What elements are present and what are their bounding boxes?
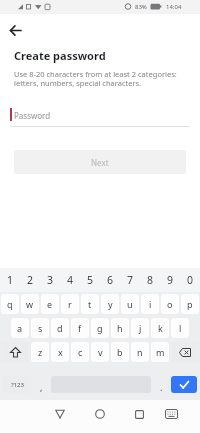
button[interactable]: z bbox=[31, 342, 49, 362]
staticText: o bbox=[167, 298, 173, 310]
button[interactable] bbox=[48, 402, 72, 426]
staticText: 2 bbox=[27, 273, 34, 287]
staticText: m bbox=[156, 346, 165, 358]
staticText: a bbox=[17, 322, 23, 334]
button[interactable]: k bbox=[151, 318, 169, 338]
button[interactable] bbox=[171, 376, 197, 393]
button[interactable]: v bbox=[91, 342, 109, 362]
staticText: q bbox=[7, 298, 13, 310]
staticText: p bbox=[187, 298, 193, 310]
staticText: j bbox=[139, 322, 142, 334]
button[interactable] bbox=[88, 402, 112, 426]
staticText: x bbox=[58, 346, 63, 358]
staticText: , bbox=[40, 381, 43, 393]
button[interactable]: p bbox=[181, 294, 199, 314]
button[interactable]: f bbox=[71, 318, 89, 338]
button[interactable]: , bbox=[32, 374, 50, 393]
staticText: y bbox=[108, 298, 113, 310]
button[interactable]: 6 bbox=[100, 268, 120, 292]
staticText: i bbox=[149, 298, 152, 310]
staticText: l bbox=[179, 322, 182, 334]
staticText: g bbox=[97, 322, 103, 334]
staticText: 5 bbox=[87, 273, 94, 287]
button[interactable]: l bbox=[171, 318, 189, 338]
staticText: b bbox=[117, 346, 123, 358]
button[interactable]: s bbox=[31, 318, 49, 338]
button[interactable]: j bbox=[131, 318, 149, 338]
staticText: f bbox=[78, 322, 82, 334]
button[interactable] bbox=[6, 21, 25, 40]
staticText: 6 bbox=[107, 273, 114, 287]
staticText: 14:04 bbox=[166, 3, 182, 11]
staticText: 0 bbox=[187, 273, 194, 287]
button[interactable]: 1 bbox=[0, 268, 20, 292]
staticText: t bbox=[88, 298, 92, 310]
button[interactable]: n bbox=[131, 342, 149, 362]
staticText: . bbox=[160, 381, 163, 393]
staticText: h bbox=[117, 322, 123, 334]
staticText: 7 bbox=[127, 273, 134, 287]
staticText: 83% bbox=[135, 3, 147, 11]
button[interactable]: w bbox=[21, 294, 39, 314]
staticText: 8 bbox=[147, 273, 154, 287]
staticText: w bbox=[26, 298, 34, 310]
button[interactable]: Next bbox=[14, 150, 186, 174]
button[interactable] bbox=[171, 342, 199, 362]
button[interactable]: r bbox=[61, 294, 79, 314]
button[interactable]: m bbox=[151, 342, 169, 362]
button[interactable]: t bbox=[81, 294, 99, 314]
button[interactable]: 5 bbox=[80, 268, 100, 292]
staticText: n bbox=[137, 346, 143, 358]
button[interactable]: x bbox=[51, 342, 69, 362]
staticText: 1 bbox=[7, 273, 14, 287]
button[interactable]: e bbox=[41, 294, 59, 314]
button[interactable]: y bbox=[101, 294, 119, 314]
button[interactable]: a bbox=[11, 318, 29, 338]
staticText: r bbox=[68, 298, 72, 310]
button[interactable]: o bbox=[161, 294, 179, 314]
staticText: u bbox=[127, 298, 133, 310]
button[interactable]: d bbox=[51, 318, 69, 338]
button[interactable]: ?123 bbox=[3, 376, 31, 393]
staticText: v bbox=[98, 346, 103, 358]
button[interactable]: 4 bbox=[60, 268, 80, 292]
staticText: ?123 bbox=[11, 381, 24, 389]
button[interactable]: c bbox=[71, 342, 89, 362]
button[interactable]: q bbox=[1, 294, 19, 314]
staticText: Next bbox=[91, 157, 109, 168]
staticText: 9 bbox=[167, 273, 174, 287]
staticText: Use 8-20 characters from at least 2 cate… bbox=[14, 69, 177, 88]
button[interactable]: 8 bbox=[140, 268, 160, 292]
button[interactable]: u bbox=[121, 294, 139, 314]
staticText: c bbox=[78, 346, 83, 358]
staticText: k bbox=[158, 322, 163, 334]
staticText: 4 bbox=[67, 273, 74, 287]
staticText: Create password bbox=[14, 48, 106, 63]
staticText: Password bbox=[14, 110, 51, 121]
staticText: e bbox=[47, 298, 53, 310]
button[interactable] bbox=[1, 342, 29, 362]
staticText: z bbox=[38, 346, 43, 358]
button[interactable]: b bbox=[111, 342, 129, 362]
button[interactable]: g bbox=[91, 318, 109, 338]
button[interactable]: 2 bbox=[20, 268, 40, 292]
button[interactable] bbox=[127, 402, 151, 426]
button[interactable]: 9 bbox=[160, 268, 180, 292]
staticText: s bbox=[38, 322, 43, 334]
button[interactable]: h bbox=[111, 318, 129, 338]
button[interactable] bbox=[159, 402, 183, 426]
button[interactable]: . bbox=[152, 374, 170, 393]
button[interactable]: 7 bbox=[120, 268, 140, 292]
button[interactable]: i bbox=[141, 294, 159, 314]
button[interactable]: 3 bbox=[40, 268, 60, 292]
button[interactable]: 0 bbox=[180, 268, 200, 292]
staticText: 3 bbox=[47, 273, 54, 287]
staticText: d bbox=[57, 322, 63, 334]
